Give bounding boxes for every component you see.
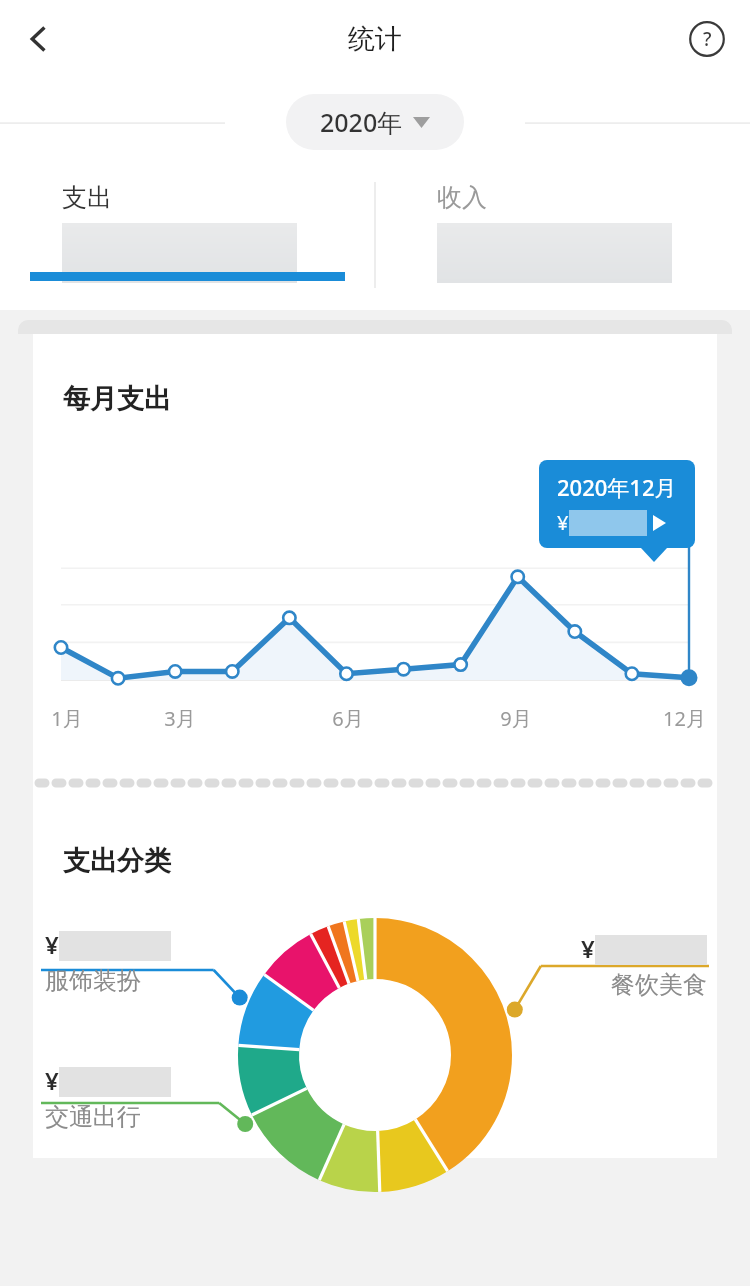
button[interactable]: Help xyxy=(676,8,738,70)
staticText: 3月 xyxy=(164,705,196,732)
staticText: ¥ xyxy=(557,509,569,536)
staticText: ? xyxy=(703,26,712,52)
staticText: 6月 xyxy=(332,705,364,732)
staticText: 交通出行 xyxy=(45,1102,141,1132)
button[interactable]: Back xyxy=(8,8,70,70)
button[interactable]: 每月支出 xyxy=(33,334,717,774)
staticText: 1月 xyxy=(51,705,83,732)
button[interactable]: 支出 xyxy=(0,160,375,283)
staticText: 2020年12月 xyxy=(557,472,677,502)
staticText: 餐饮美食 xyxy=(611,970,707,1000)
staticText: 收入 xyxy=(437,182,487,213)
staticText: ¥ xyxy=(581,932,595,965)
button[interactable]: 2020年 xyxy=(286,94,464,150)
staticText: 服饰装扮 xyxy=(45,966,141,996)
button[interactable]: 2020年12月 xyxy=(539,460,695,548)
staticText: 统计 xyxy=(348,22,402,56)
staticText: ¥ xyxy=(45,928,59,961)
staticText: 12月 xyxy=(663,705,706,732)
staticText: 支出分类 xyxy=(63,844,171,878)
button[interactable]: 支出分类 xyxy=(33,792,717,1158)
staticText: 2020年 xyxy=(320,105,403,139)
staticText: ¥ xyxy=(45,1064,59,1097)
staticText: 每月支出 xyxy=(63,382,171,416)
staticText: 支出 xyxy=(62,182,112,213)
staticText: 9月 xyxy=(500,705,532,732)
button[interactable]: 收入 xyxy=(375,160,750,283)
